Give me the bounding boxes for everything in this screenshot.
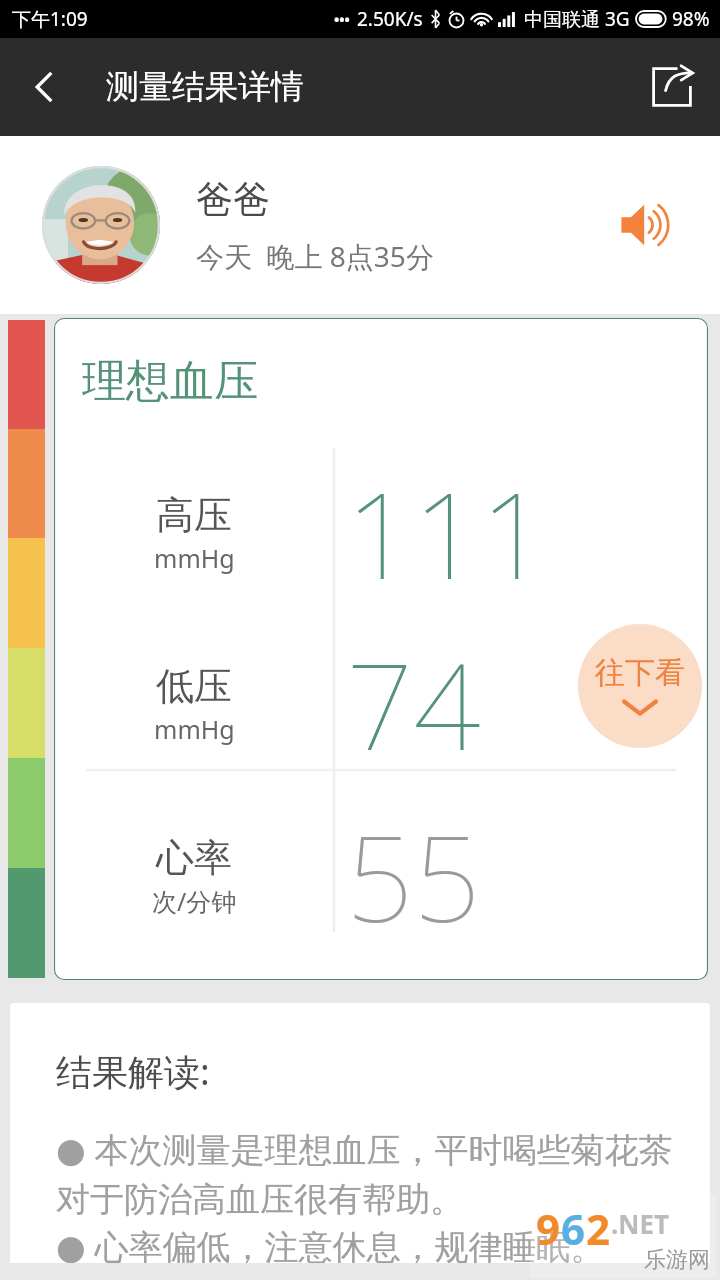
- staticText: 中国联通 3G: [524, 6, 630, 32]
- staticText: 2: [586, 1200, 611, 1257]
- button[interactable]: 播放语音: [606, 182, 692, 268]
- staticText: 往下看: [595, 654, 685, 692]
- staticText: 低压: [156, 662, 232, 710]
- staticText: mmHg: [154, 541, 235, 575]
- button[interactable]: Back: [0, 38, 88, 136]
- staticText: 111: [346, 453, 548, 614]
- staticText: 6: [561, 1200, 586, 1257]
- staticText: 高压: [156, 491, 232, 539]
- button[interactable]: 往下看: [578, 624, 702, 748]
- staticText: 55: [346, 796, 481, 957]
- staticText: 次/分钟: [152, 884, 237, 918]
- staticText: 理想血压: [82, 354, 258, 409]
- staticText: ● 本次测量是理想血压，平时喝些菊花茶对于防治高血压很有帮助。: [56, 1126, 686, 1221]
- staticText: 74: [346, 624, 481, 785]
- staticText: mmHg: [154, 712, 235, 746]
- staticText: 结果解读:: [56, 1047, 210, 1096]
- staticText: .NET: [611, 1206, 670, 1241]
- staticText: 9: [536, 1200, 561, 1257]
- staticText: •••: [334, 10, 350, 29]
- button[interactable]: Share: [624, 38, 720, 136]
- staticText: 爸爸: [196, 176, 270, 223]
- button[interactable]: 理想血压: [54, 318, 708, 980]
- staticText: 测量结果详情: [106, 66, 304, 108]
- staticText: 下午1:09: [12, 6, 88, 32]
- staticText: 98%: [672, 6, 710, 32]
- staticText: 今天 晚上 8点35分: [196, 237, 434, 275]
- staticText: ● 心率偏低，注意休息，规律睡眠。: [56, 1223, 605, 1263]
- staticText: 心率: [156, 834, 232, 882]
- staticText: 乐游网: [644, 1246, 710, 1274]
- button[interactable]: 结果解读:: [10, 1003, 710, 1263]
- staticText: 2.50K/s: [357, 6, 423, 32]
